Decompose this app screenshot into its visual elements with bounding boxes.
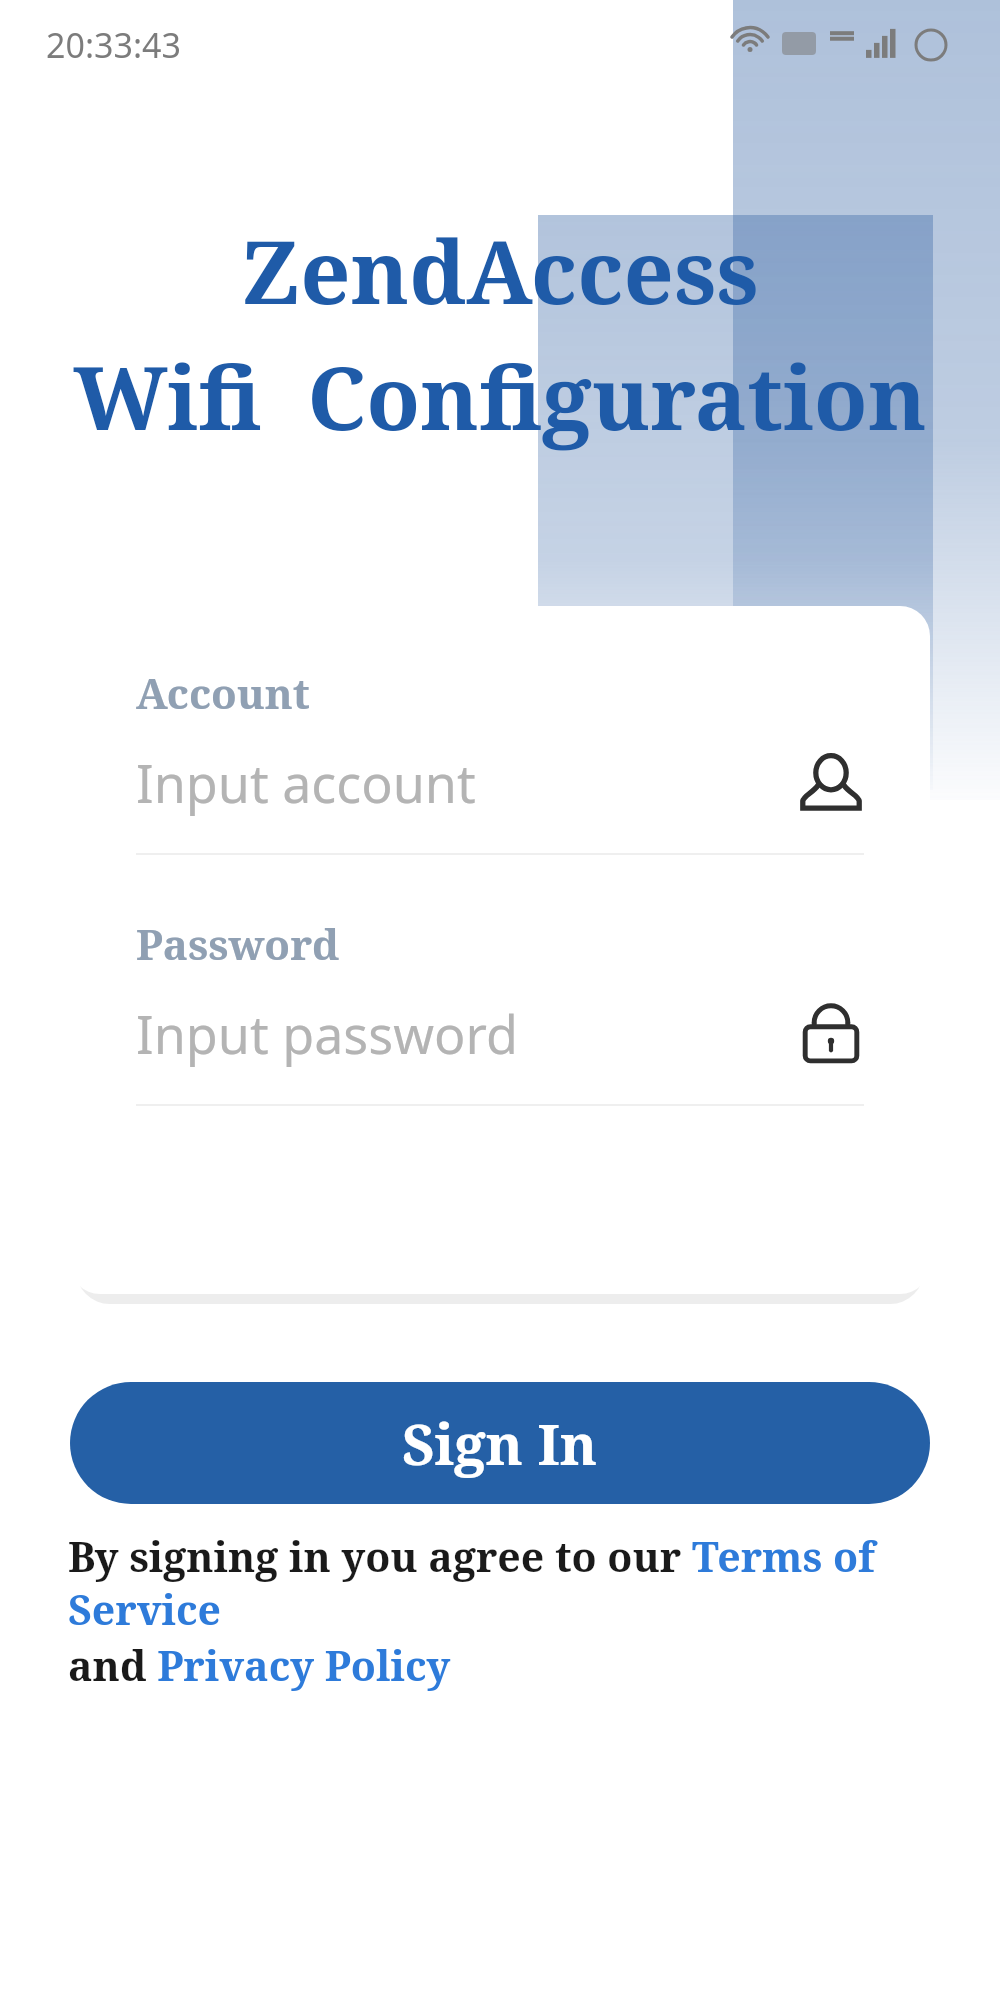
staticText: and Privacy Policy: [68, 1637, 451, 1693]
button[interactable]: Sign In: [70, 1382, 930, 1504]
staticText: Input password: [136, 998, 798, 1068]
button[interactable]: By signing in you agree to our Terms of …: [68, 1528, 948, 1693]
staticText: Account: [136, 664, 310, 721]
staticText: Input account: [136, 747, 798, 817]
staticText: By signing in you agree to our Terms of …: [68, 1528, 948, 1637]
staticText: ZendAccess: [241, 210, 759, 330]
staticText: 20:33:43: [46, 22, 181, 68]
staticText: Wifi Configuration: [73, 336, 927, 456]
button[interactable]: Password: [70, 915, 930, 1106]
staticText: Password: [136, 915, 340, 972]
staticText: Sign In: [402, 1405, 598, 1481]
button[interactable]: Account: [70, 664, 930, 855]
button[interactable]: Account: [798, 749, 864, 815]
button[interactable]: Show password: [798, 1000, 864, 1066]
